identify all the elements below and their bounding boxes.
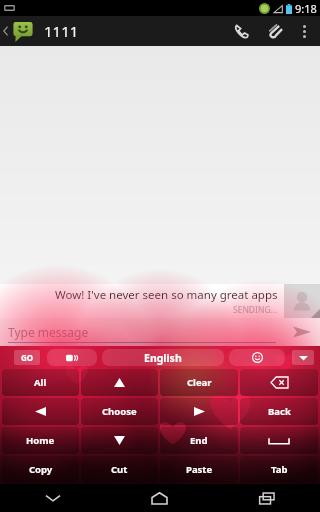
button[interactable]: English (102, 349, 224, 366)
button[interactable]: Back (240, 398, 318, 425)
button[interactable]: Space (240, 427, 318, 454)
button[interactable]: Send (284, 318, 320, 346)
button[interactable]: Move left (2, 398, 79, 425)
staticText: All (34, 376, 47, 389)
button[interactable]: Recent apps (213, 484, 320, 512)
button[interactable]: End (160, 427, 238, 454)
staticText: Choose (102, 405, 137, 418)
button[interactable]: Cut (81, 456, 158, 483)
button[interactable]: Choose (81, 398, 158, 425)
staticText: English (144, 351, 182, 365)
button[interactable]: All (2, 369, 79, 396)
button[interactable]: Move up (81, 369, 158, 396)
staticText: SENDING... (233, 304, 278, 316)
button[interactable]: Call (224, 16, 258, 46)
button[interactable]: Type message (8, 318, 276, 346)
button[interactable]: Navigate up (0, 16, 37, 46)
button[interactable]: Copy (2, 456, 79, 483)
button[interactable]: GO (14, 350, 40, 365)
button[interactable]: Move right (160, 398, 238, 425)
staticText: Paste (186, 463, 213, 476)
staticText: Wow! I've never seen so many great apps (55, 287, 278, 303)
button[interactable]: Wow! I've never seen so many great apps (0, 284, 284, 318)
staticText: 1111 (44, 21, 79, 41)
button[interactable]: Voice input (47, 349, 97, 366)
button[interactable]: Delete (240, 369, 318, 396)
staticText: Copy (29, 463, 53, 476)
button[interactable]: Move down (81, 427, 158, 454)
button[interactable]: Home (2, 427, 79, 454)
staticText: GO (21, 352, 34, 363)
staticText: Tab (271, 463, 288, 476)
button[interactable]: Attach (258, 16, 292, 46)
button[interactable]: Emoji (229, 349, 285, 366)
staticText: Home (26, 434, 55, 447)
button[interactable]: Home (106, 484, 213, 512)
button[interactable]: Clear (160, 369, 238, 396)
staticText: Back (268, 405, 291, 418)
button[interactable]: Tab (240, 456, 318, 483)
staticText: End (190, 434, 208, 447)
button[interactable]: Hide keyboard (0, 484, 106, 512)
button[interactable]: More options (292, 16, 316, 46)
staticText: Clear (187, 376, 212, 389)
button[interactable]: Hide keyboard (292, 350, 314, 365)
button[interactable]: Paste (160, 456, 238, 483)
staticText: Cut (111, 463, 128, 476)
staticText: 9:18 (295, 1, 317, 16)
staticText: Type message (8, 324, 89, 340)
